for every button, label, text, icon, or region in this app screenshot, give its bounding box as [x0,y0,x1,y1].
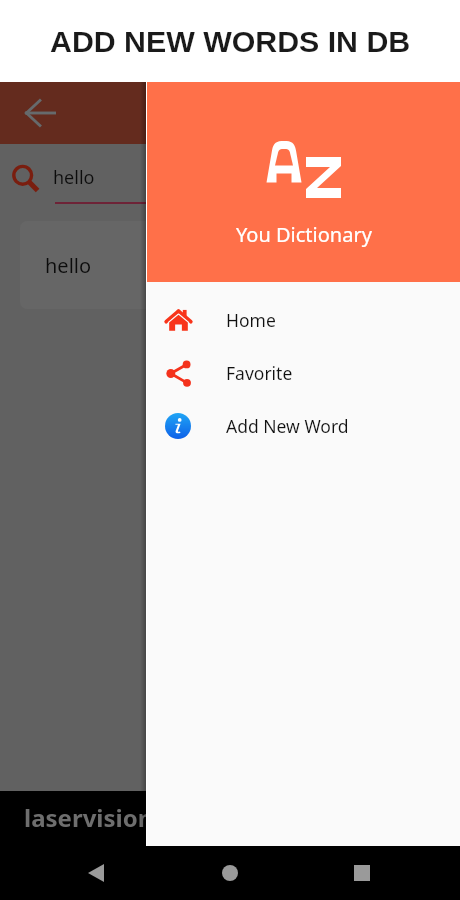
staticText: ADD NEW WORDS IN DB [50,25,411,59]
staticText: laservision [24,801,154,834]
staticText: hello [53,165,95,190]
staticText: Favorite [226,361,293,385]
staticText: Home [226,308,276,332]
staticText: hello [45,252,92,279]
button[interactable]: Add New Word [147,399,460,452]
button[interactable]: Back [77,846,115,900]
staticText: Add New Word [226,414,349,438]
button[interactable]: Favorite [147,346,460,399]
button[interactable]: Recents [343,846,381,900]
button[interactable]: Home [211,846,249,900]
button[interactable]: Home [147,293,460,346]
button[interactable]: Back [18,82,63,144]
staticText: You Dictionary [236,221,372,248]
